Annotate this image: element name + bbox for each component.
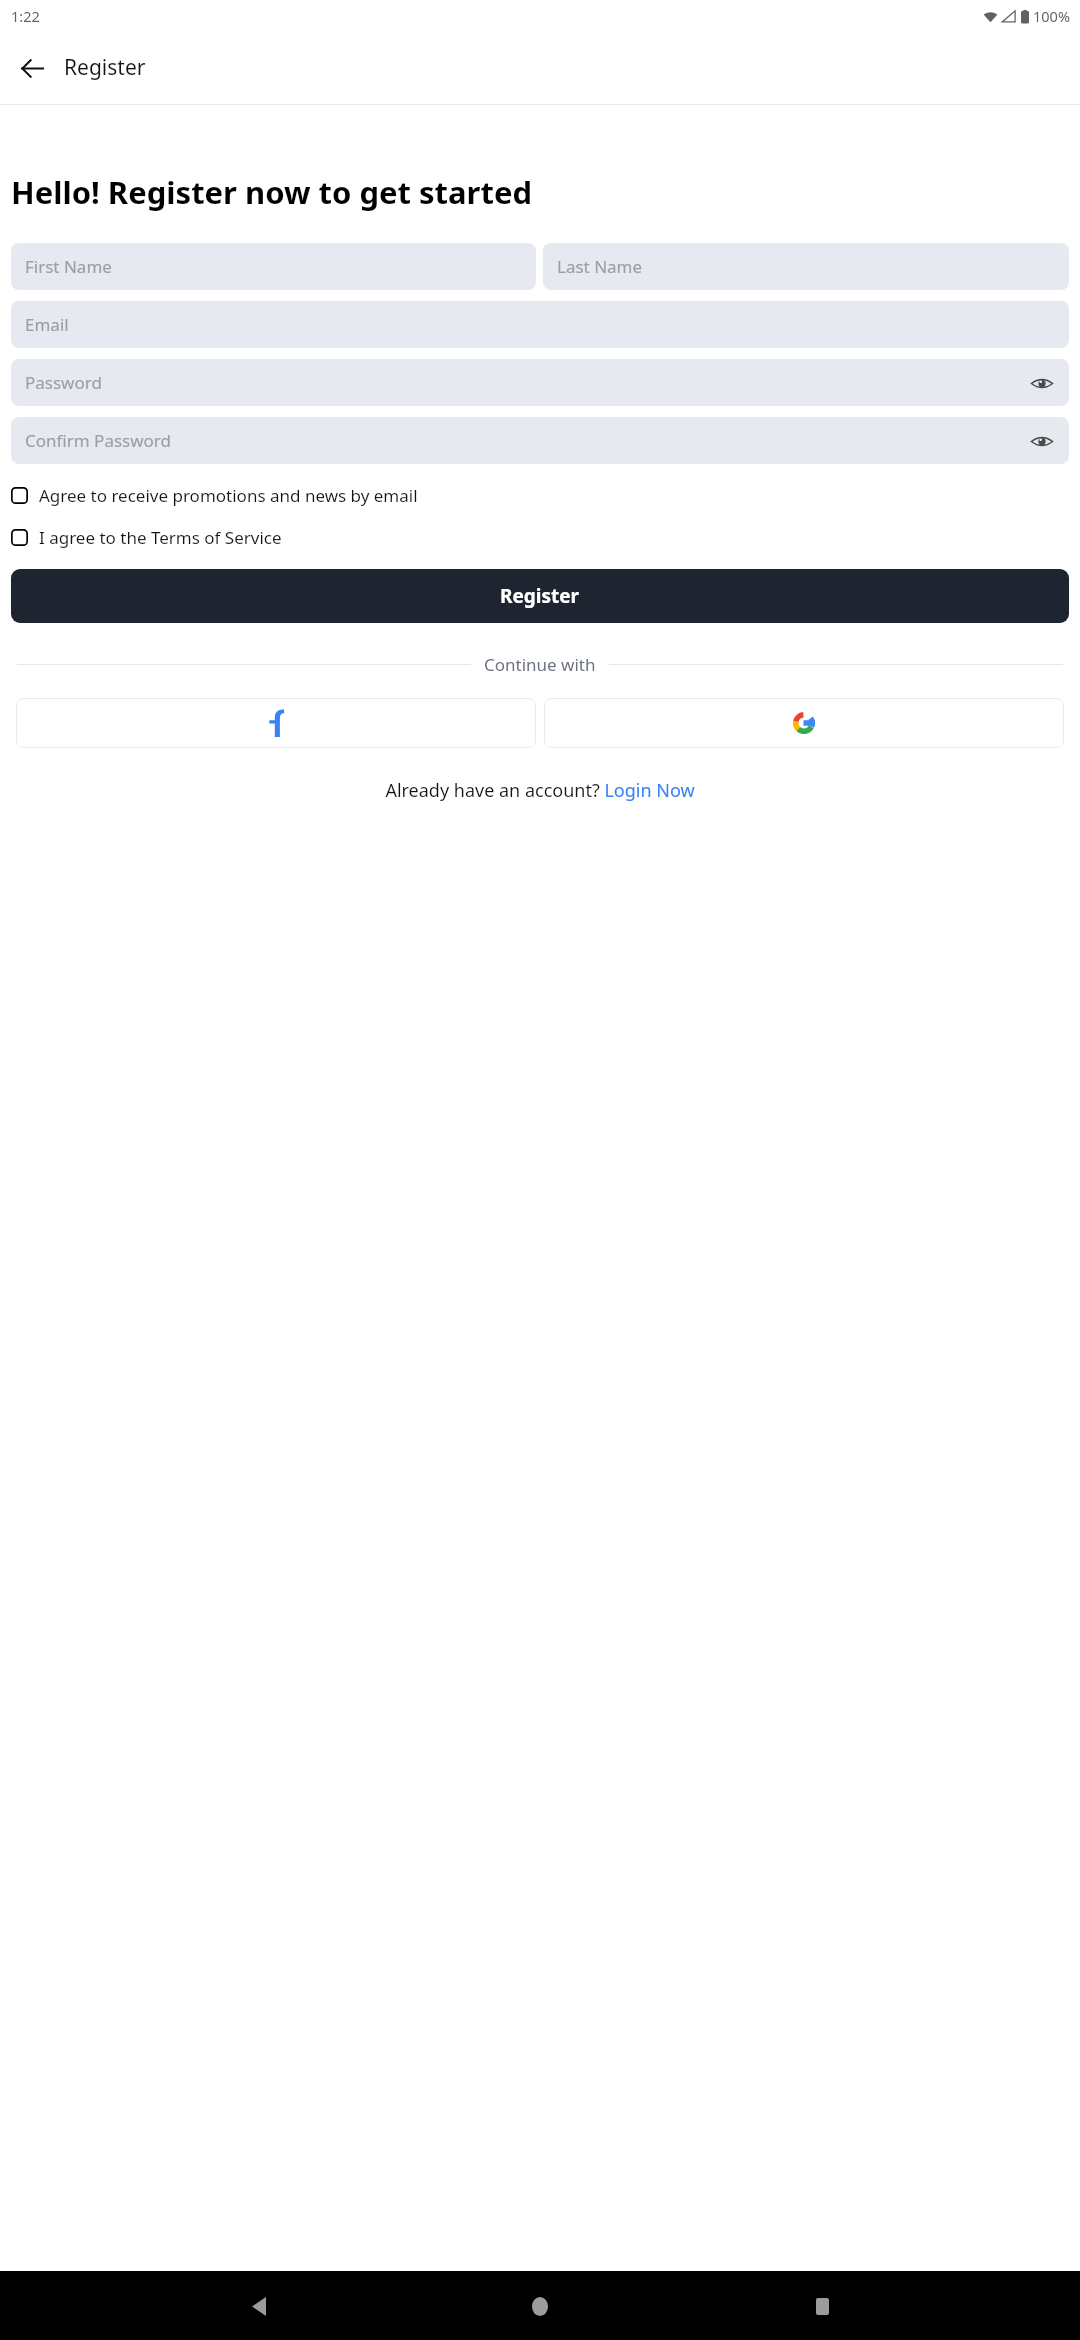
staticText: Hello! Register now to get started xyxy=(11,171,533,213)
button[interactable]: Last Name xyxy=(543,243,1069,290)
button[interactable]: Continue with Google xyxy=(544,698,1064,748)
button[interactable]: Password xyxy=(11,359,1069,406)
staticText: Register xyxy=(64,53,146,82)
button[interactable]: Home xyxy=(517,2283,563,2329)
staticText: First Name xyxy=(25,255,112,278)
button[interactable]: Back xyxy=(9,45,55,91)
staticText: Register xyxy=(500,583,580,609)
staticText: Already have an account? Login Now xyxy=(385,778,695,803)
button[interactable]: Recents xyxy=(799,2283,845,2329)
button[interactable]: First Name xyxy=(11,243,536,290)
button[interactable]: Agree to receive promotions and news by … xyxy=(11,477,1069,513)
button[interactable]: Toggle password visibility xyxy=(1029,370,1055,396)
staticText: Email xyxy=(25,313,69,336)
staticText: Last Name xyxy=(557,255,643,278)
button[interactable]: I agree to the Terms of Service xyxy=(11,519,1069,555)
button[interactable]: Register xyxy=(11,569,1069,623)
button[interactable]: Confirm Password xyxy=(11,417,1069,464)
staticText: Agree to receive promotions and news by … xyxy=(39,484,418,507)
staticText: Continue with xyxy=(484,653,596,676)
staticText: Password xyxy=(25,371,102,394)
button[interactable]: Already have an account? Login Now xyxy=(385,778,695,803)
staticText: 100% xyxy=(1033,6,1070,26)
button[interactable]: Email xyxy=(11,301,1069,348)
staticText: I agree to the Terms of Service xyxy=(39,526,282,549)
staticText: 1:22 xyxy=(11,6,40,26)
button[interactable]: Toggle password visibility xyxy=(1029,428,1055,454)
button[interactable]: Back xyxy=(236,2283,282,2329)
staticText: Confirm Password xyxy=(25,429,171,452)
button[interactable]: Continue with Facebook xyxy=(16,698,536,748)
